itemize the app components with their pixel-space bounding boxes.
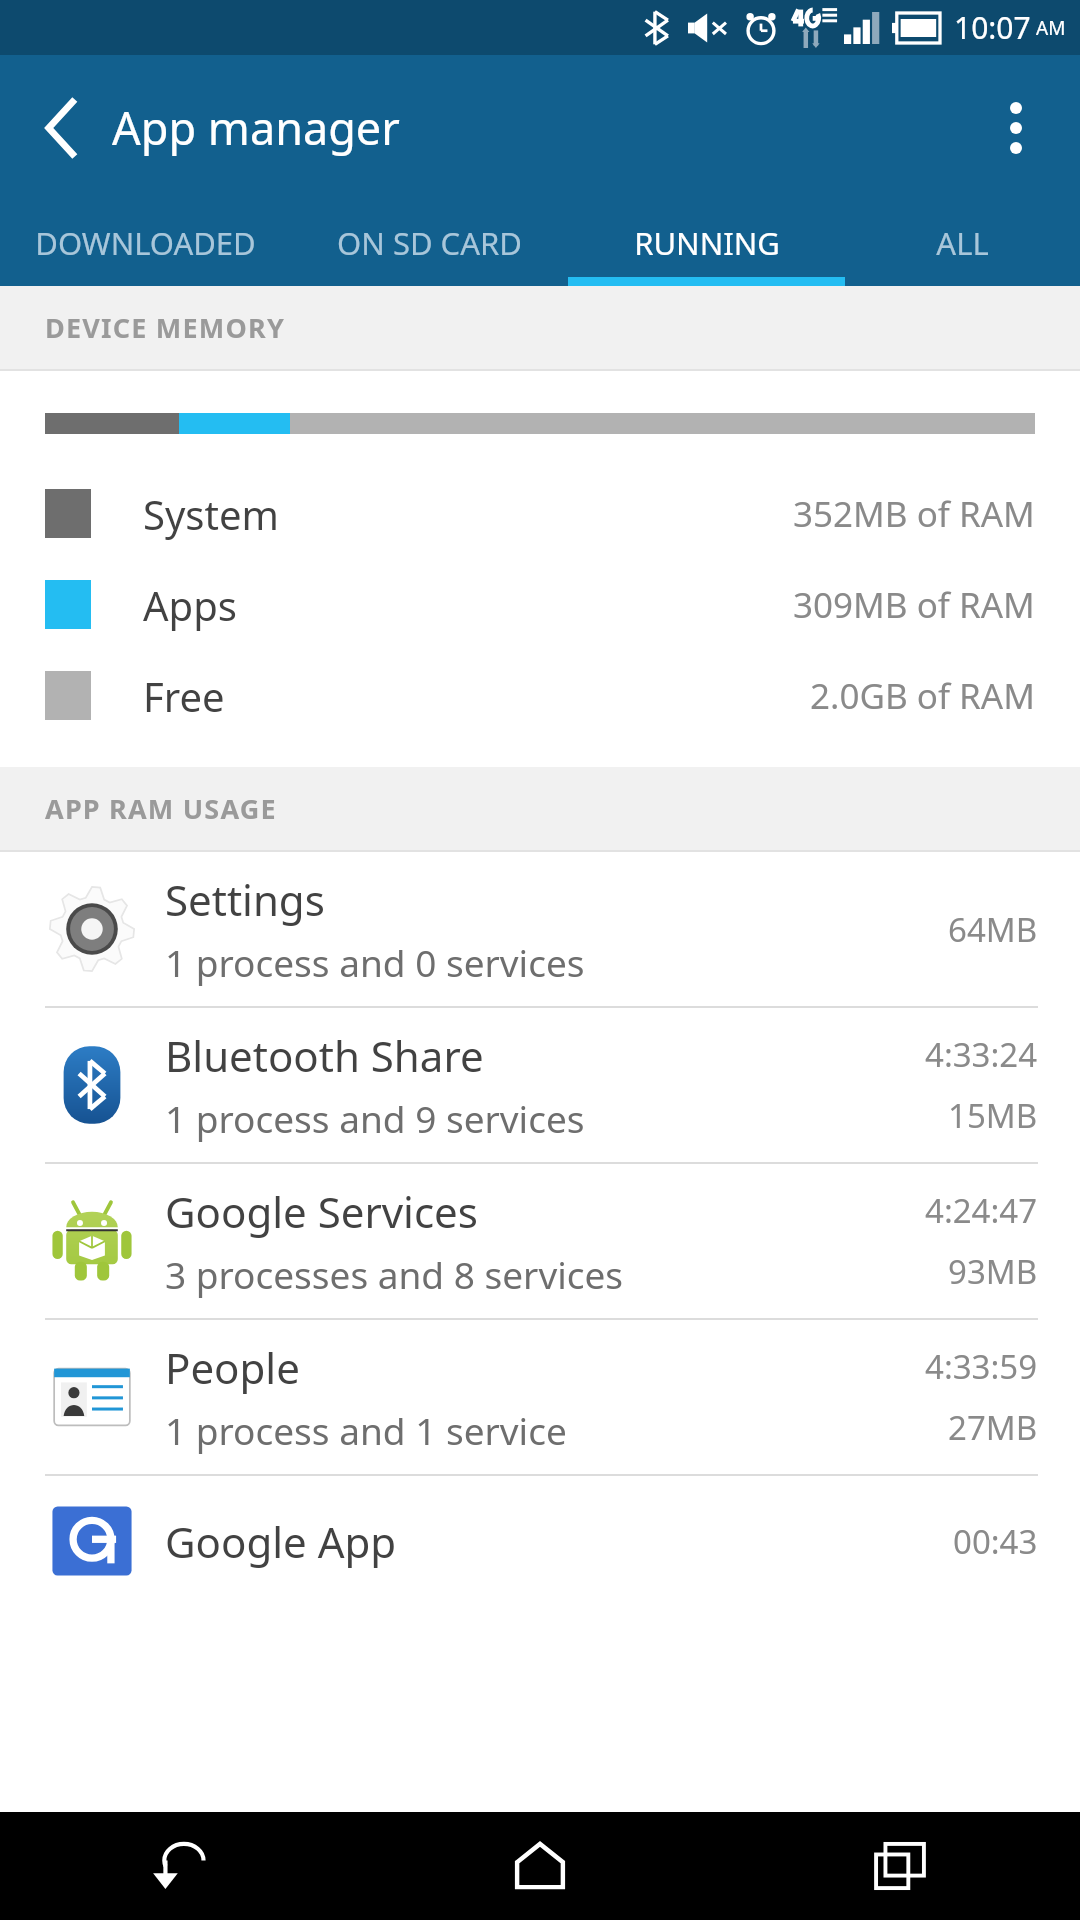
button[interactable]: More options bbox=[980, 92, 1052, 164]
staticText: 1 process and 0 services bbox=[165, 937, 585, 987]
staticText: 1 process and 9 services bbox=[165, 1093, 585, 1143]
button[interactable]: Back bbox=[36, 101, 90, 155]
staticText: 4:24:47 bbox=[925, 1188, 1038, 1233]
staticText: 3 processes and 8 services bbox=[165, 1249, 624, 1299]
button[interactable]: System bbox=[0, 468, 1080, 559]
staticText: 4:33:59 bbox=[925, 1344, 1038, 1389]
button[interactable]: Free bbox=[0, 650, 1080, 741]
staticText: 10:07 bbox=[954, 7, 1031, 48]
staticText: 4:33:24 bbox=[925, 1032, 1038, 1077]
button[interactable]: Bluetooth Share bbox=[0, 1008, 1080, 1162]
button[interactable]: DOWNLOADED bbox=[0, 200, 291, 286]
button[interactable]: Recent apps bbox=[720, 1812, 1080, 1920]
staticText: App manager bbox=[112, 97, 400, 158]
button[interactable]: ALL bbox=[845, 200, 1080, 286]
staticText: Apps bbox=[143, 578, 237, 632]
staticText: 1 process and 1 service bbox=[165, 1405, 567, 1455]
staticText: 00:43 bbox=[953, 1519, 1038, 1564]
button[interactable]: ON SD CARD bbox=[291, 200, 568, 286]
button[interactable]: Google Services bbox=[0, 1164, 1080, 1318]
staticText: Settings bbox=[165, 871, 325, 928]
staticText: 352MB of RAM bbox=[793, 490, 1035, 538]
staticText: DEVICE MEMORY bbox=[45, 309, 286, 346]
staticText: RUNNING bbox=[634, 222, 780, 264]
button[interactable]: Home bbox=[360, 1812, 720, 1920]
staticText: ALL bbox=[936, 222, 989, 264]
staticText: 15MB bbox=[948, 1093, 1038, 1138]
staticText: 2.0GB of RAM bbox=[810, 672, 1035, 720]
button[interactable]: Settings bbox=[0, 852, 1080, 1006]
staticText: 27MB bbox=[948, 1405, 1038, 1450]
staticText: Google App bbox=[165, 1513, 397, 1570]
button[interactable]: RUNNING bbox=[568, 200, 845, 286]
staticText: ON SD CARD bbox=[337, 222, 522, 264]
staticText: DOWNLOADED bbox=[35, 222, 256, 264]
button[interactable]: Google App bbox=[0, 1476, 1080, 1606]
staticText: People bbox=[165, 1339, 300, 1396]
staticText: 309MB of RAM bbox=[793, 581, 1035, 629]
staticText: Bluetooth Share bbox=[165, 1027, 484, 1084]
staticText: Free bbox=[143, 669, 225, 723]
button[interactable]: Back bbox=[0, 1812, 360, 1920]
button[interactable]: Apps bbox=[0, 559, 1080, 650]
staticText: 93MB bbox=[948, 1249, 1038, 1294]
staticText: APP RAM USAGE bbox=[45, 790, 277, 827]
staticText: 64MB bbox=[948, 907, 1038, 952]
staticText: Google Services bbox=[165, 1183, 478, 1240]
button[interactable]: People bbox=[0, 1320, 1080, 1474]
staticText: AM bbox=[1036, 15, 1066, 41]
staticText: System bbox=[143, 487, 279, 541]
